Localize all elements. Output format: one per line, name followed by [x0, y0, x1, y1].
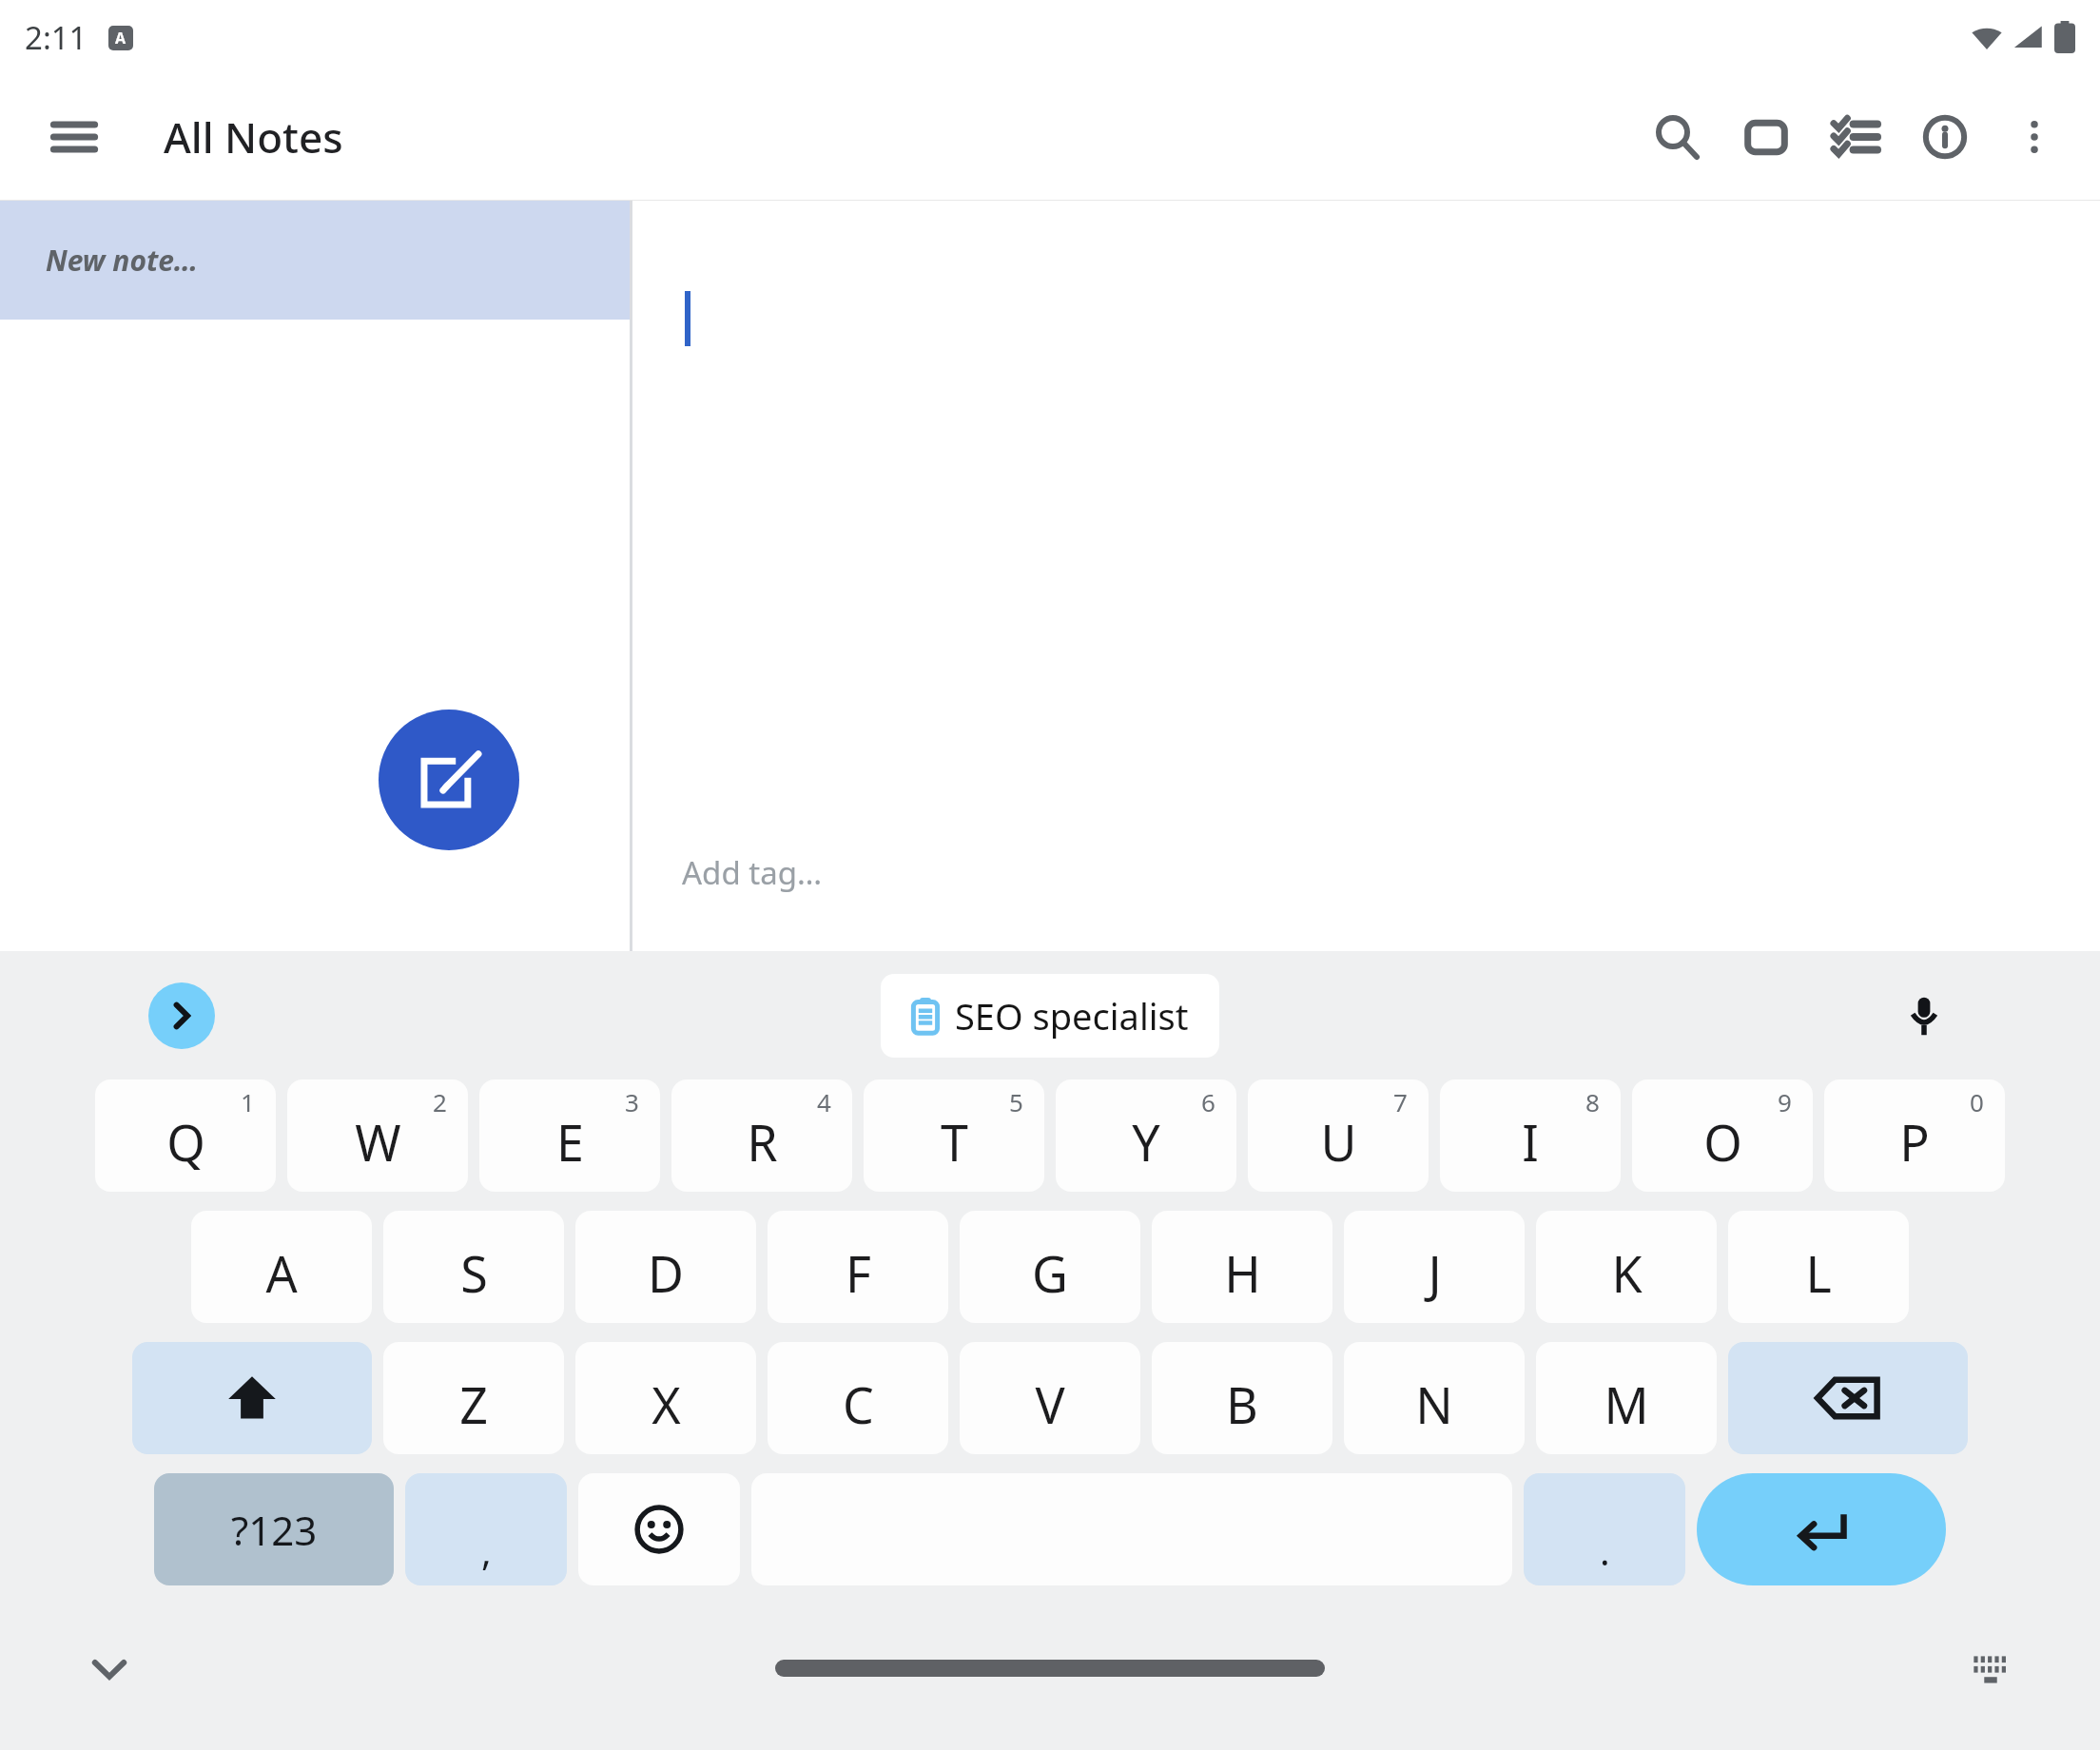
button[interactable]: Expand toolbar: [148, 982, 215, 1049]
button[interactable]: X: [575, 1342, 756, 1454]
staticText: Y: [1132, 1108, 1160, 1176]
button[interactable]: J: [1344, 1211, 1525, 1323]
staticText: X: [651, 1371, 681, 1438]
button[interactable]: O: [1632, 1079, 1813, 1192]
button[interactable]: B: [1152, 1342, 1332, 1454]
button[interactable]: Shift: [132, 1342, 372, 1454]
staticText: U: [1320, 1108, 1357, 1176]
button[interactable]: Menu: [44, 107, 105, 167]
button[interactable]: ,: [405, 1473, 567, 1585]
staticText: Add tag…: [682, 851, 823, 894]
staticText: D: [648, 1239, 684, 1307]
button[interactable]: Switch keyboard: [1957, 1635, 2024, 1701]
staticText: All Notes: [164, 108, 343, 165]
button[interactable]: Backspace: [1728, 1342, 1968, 1454]
button[interactable]: Select: [1721, 92, 1811, 182]
button[interactable]: New note: [379, 710, 519, 850]
staticText: ?123: [231, 1503, 318, 1557]
staticText: New note…: [46, 241, 198, 280]
staticText: M: [1604, 1371, 1649, 1438]
button[interactable]: C: [768, 1342, 948, 1454]
button[interactable]: T: [864, 1079, 1044, 1192]
staticText: L: [1805, 1239, 1832, 1307]
button[interactable]: Emoji: [578, 1473, 740, 1585]
staticText: C: [843, 1371, 874, 1438]
button[interactable]: M: [1536, 1342, 1717, 1454]
staticText: 1: [241, 1085, 255, 1118]
button[interactable]: L: [1728, 1211, 1909, 1323]
button[interactable]: Hide keyboard: [76, 1635, 143, 1701]
staticText: S: [460, 1239, 488, 1307]
button[interactable]: G: [960, 1211, 1140, 1323]
button[interactable]: I: [1440, 1079, 1621, 1192]
staticText: F: [846, 1239, 871, 1307]
staticText: 3: [625, 1085, 639, 1118]
button[interactable]: Voice input: [1891, 982, 1957, 1049]
staticText: I: [1522, 1108, 1539, 1176]
staticText: Q: [166, 1108, 205, 1176]
button[interactable]: Search: [1632, 92, 1721, 182]
staticText: H: [1224, 1239, 1261, 1307]
button[interactable]: K: [1536, 1211, 1717, 1323]
staticText: J: [1428, 1239, 1442, 1307]
staticText: SEO specialist: [955, 991, 1189, 1040]
staticText: R: [747, 1108, 778, 1176]
staticText: A: [115, 28, 126, 49]
button[interactable]: New note…: [0, 201, 630, 320]
staticText: O: [1703, 1108, 1742, 1176]
staticText: N: [1415, 1371, 1453, 1438]
button[interactable]: R: [671, 1079, 852, 1192]
button[interactable]: Info: [1900, 92, 1990, 182]
staticText: ,: [481, 1525, 492, 1576]
button[interactable]: Z: [383, 1342, 564, 1454]
staticText: 9: [1778, 1085, 1792, 1118]
button[interactable]: Add tag…: [671, 842, 834, 904]
button[interactable]: A: [191, 1211, 372, 1323]
button[interactable]: S: [383, 1211, 564, 1323]
staticText: K: [1611, 1239, 1643, 1307]
button[interactable]: Checklist: [1811, 92, 1900, 182]
staticText: 8: [1585, 1085, 1600, 1118]
button[interactable]: U: [1248, 1079, 1429, 1192]
button[interactable]: SEO specialist: [881, 974, 1219, 1058]
button[interactable]: F: [768, 1211, 948, 1323]
staticText: 2: [433, 1085, 447, 1118]
button[interactable]: H: [1152, 1211, 1332, 1323]
button[interactable]: Enter: [1697, 1473, 1946, 1585]
staticText: E: [556, 1108, 584, 1176]
staticText: V: [1035, 1371, 1065, 1438]
staticText: 2:11: [25, 16, 87, 59]
staticText: P: [1899, 1108, 1930, 1176]
staticText: 6: [1201, 1085, 1215, 1118]
staticText: G: [1032, 1239, 1068, 1307]
staticText: 5: [1009, 1085, 1023, 1118]
button[interactable]: Q: [95, 1079, 276, 1192]
button[interactable]: E: [479, 1079, 660, 1192]
staticText: .: [1600, 1525, 1610, 1576]
button[interactable]: V: [960, 1342, 1140, 1454]
button[interactable]: .: [1524, 1473, 1685, 1585]
button[interactable]: D: [575, 1211, 756, 1323]
staticText: 4: [817, 1085, 831, 1118]
staticText: Z: [459, 1371, 488, 1438]
staticText: 7: [1393, 1085, 1408, 1118]
button[interactable]: Y: [1056, 1079, 1236, 1192]
button[interactable]: N: [1344, 1342, 1525, 1454]
staticText: B: [1226, 1371, 1258, 1438]
button[interactable]: ?123: [154, 1473, 394, 1585]
button[interactable]: More options: [1990, 92, 2079, 182]
button[interactable]: W: [287, 1079, 468, 1192]
staticText: A: [265, 1239, 298, 1307]
staticText: W: [355, 1108, 401, 1176]
staticText: 0: [1970, 1085, 1984, 1118]
button[interactable]: P: [1824, 1079, 2005, 1192]
staticText: T: [941, 1108, 968, 1176]
